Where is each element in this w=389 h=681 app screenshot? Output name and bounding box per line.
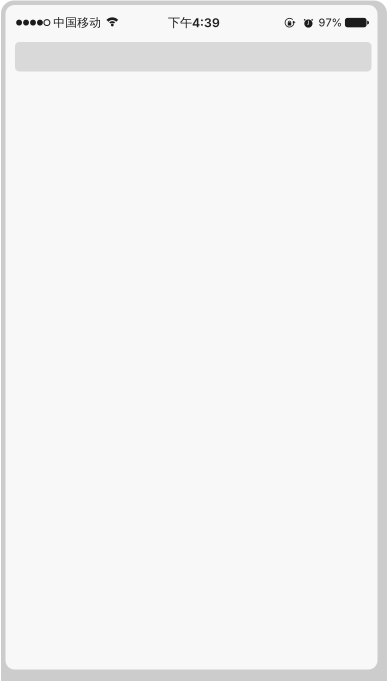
staticText: 中国移动 bbox=[53, 15, 101, 30]
button[interactable]: Search bbox=[15, 42, 371, 71]
staticText: 下午4:39 bbox=[168, 15, 220, 30]
staticText: 97% bbox=[319, 16, 343, 29]
